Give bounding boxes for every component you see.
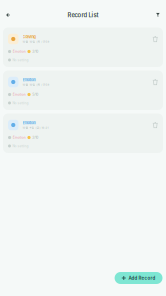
staticText: 5/10	[32, 92, 38, 96]
staticText: Emotion	[22, 78, 35, 82]
button[interactable]: Emotion	[3, 113, 163, 153]
button[interactable]: Craving	[3, 27, 163, 67]
staticText: No setting	[13, 144, 29, 148]
button[interactable]: Filter	[151, 8, 165, 22]
staticText: 2/10	[32, 49, 38, 53]
staticText: Record List	[67, 11, 98, 19]
button[interactable]: Add Record	[115, 272, 162, 284]
staticText: 10월 10일 (목) 17:59	[22, 40, 49, 43]
staticText: No setting	[13, 58, 29, 62]
staticText: 10월 10일 (목) 17:59	[22, 83, 49, 86]
staticText: Emotion	[13, 92, 26, 96]
staticText: 2/10	[32, 135, 38, 139]
staticText: Emotion	[13, 135, 26, 139]
staticText: No setting	[13, 101, 29, 105]
staticText: Craving	[22, 35, 35, 39]
staticText: Emotion	[13, 49, 26, 53]
staticText: 10월 4일 (금) 16:21	[22, 126, 48, 129]
button[interactable]: Back	[1, 8, 15, 22]
staticText: Add Record	[128, 275, 155, 281]
button[interactable]: Emotion	[3, 70, 163, 110]
staticText: Emotion	[22, 121, 35, 125]
